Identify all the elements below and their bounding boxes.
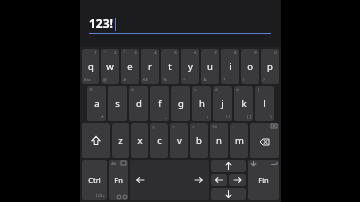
staticText: Fn: [114, 175, 123, 185]
staticText: ): [263, 77, 265, 83]
staticText: c: [157, 134, 162, 147]
staticText: 4: [154, 50, 157, 56]
button[interactable]: <: [170, 123, 188, 158]
button[interactable]: >: [190, 123, 208, 158]
staticText: v: [177, 134, 182, 147]
button[interactable]: f: [150, 86, 169, 121]
button[interactable]: Right: [229, 174, 246, 186]
staticText: p: [267, 60, 273, 73]
staticText: k: [241, 97, 247, 110]
button[interactable]: ö: [213, 86, 232, 121]
button[interactable]: Down: [211, 188, 246, 200]
staticText: |: [257, 87, 260, 93]
staticText: é: [101, 114, 104, 120]
button[interactable]: 1: [82, 49, 99, 84]
button[interactable]: ·: [108, 86, 127, 121]
button[interactable]: 123!: [89, 12, 271, 34]
staticText: %: [163, 77, 167, 83]
staticText: f: [158, 97, 162, 110]
staticText: a: [94, 97, 100, 110]
button[interactable]: x: [131, 123, 148, 158]
staticText: 123!: [89, 15, 113, 31]
button[interactable]: |: [255, 86, 274, 121]
button[interactable]: Alt: [109, 160, 128, 200]
button[interactable]: 9: [241, 49, 259, 84]
button[interactable]: ö: [129, 86, 148, 121]
staticText: &: [203, 77, 207, 83]
staticText: ö: [236, 87, 239, 93]
staticText: !: [123, 49, 125, 55]
staticText: ç: [152, 124, 155, 130]
button[interactable]: ö: [234, 86, 253, 121]
staticText: h: [199, 97, 205, 110]
button[interactable]: 8: [221, 49, 239, 84]
staticText: 6: [194, 50, 197, 56]
staticText: ?ö: [212, 124, 217, 130]
staticText: ·: [110, 87, 112, 93]
staticText: 0: [274, 50, 277, 56]
staticText: Ctrl: [88, 175, 101, 185]
staticText: Fin: [258, 175, 269, 185]
button[interactable]: 5: [161, 49, 179, 84]
staticText: Esc: [84, 77, 91, 83]
staticText: 2: [114, 50, 117, 56]
button[interactable]: Fin: [248, 160, 279, 200]
button[interactable]: 2: [101, 49, 119, 84]
staticText: #: [123, 77, 126, 83]
staticText: ö: [131, 87, 134, 93]
button[interactable]: ?ö: [210, 123, 228, 158]
staticText: t: [168, 60, 172, 73]
staticText: ≡: [89, 87, 93, 92]
staticText: r: [148, 60, 152, 73]
button[interactable]: 3: [121, 49, 139, 84]
staticText: s: [115, 97, 120, 110]
button[interactable]: 4: [141, 49, 159, 84]
button[interactable]: 7: [201, 49, 219, 84]
staticText: g: [178, 97, 184, 110]
staticText: -: [173, 87, 175, 93]
button[interactable]: Up: [211, 160, 246, 172]
button[interactable]: z: [112, 123, 129, 158]
staticText: o: [247, 60, 253, 73]
button[interactable]: Left: [211, 174, 227, 186]
staticText: n: [216, 134, 222, 147]
staticText: €$: [143, 77, 148, 83]
staticText: x: [137, 134, 143, 147]
staticText: 3: [134, 50, 137, 56]
button[interactable]: 6: [181, 49, 199, 84]
staticText: @: [103, 77, 107, 83]
button[interactable]: :: [230, 123, 248, 158]
staticText: 5: [174, 50, 177, 56]
staticText: [ ]: [247, 114, 251, 120]
staticText: j: [221, 97, 224, 110]
staticText: u: [207, 60, 213, 73]
staticText: ~: [103, 49, 106, 55]
button[interactable]: -: [171, 86, 190, 121]
staticText: ( ): [226, 114, 230, 120]
staticText: =: [194, 87, 197, 93]
staticText: b: [196, 134, 202, 147]
button[interactable]: 0: [261, 49, 279, 84]
staticText: >: [192, 124, 195, 130]
staticText: 9: [254, 50, 257, 56]
staticText: y: [188, 60, 193, 73]
staticText: (: [243, 77, 245, 83]
button[interactable]: Shift: [82, 123, 110, 158]
staticText: m: [235, 134, 244, 147]
staticText: ^: [183, 77, 186, 83]
staticText: _: [165, 114, 167, 120]
button[interactable]: Space: [130, 160, 209, 200]
staticText: i: [229, 60, 232, 73]
staticText: *: [223, 77, 226, 83]
button[interactable]: ç: [150, 123, 168, 158]
staticText: l: [263, 97, 266, 110]
button[interactable]: =: [192, 86, 211, 121]
staticText: w: [106, 60, 114, 73]
button[interactable]: ≡: [87, 86, 106, 121]
button[interactable]: Ctrl: [82, 160, 107, 200]
staticText: +: [206, 114, 209, 120]
staticText: d: [136, 97, 142, 110]
button[interactable]: Backspace: [250, 123, 279, 158]
staticText: z: [118, 134, 123, 147]
staticText: 8: [234, 50, 237, 56]
